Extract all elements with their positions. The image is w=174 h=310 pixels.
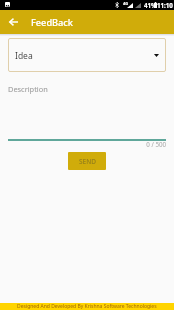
button[interactable]: SEND (68, 152, 106, 170)
staticText: 11:10 (157, 1, 173, 9)
staticText: FeedBack (31, 16, 74, 29)
button[interactable]: Idea (8, 38, 166, 72)
staticText: 4G (123, 1, 129, 6)
staticText: Idea (15, 50, 33, 62)
staticText: 0 / 500 (8, 140, 166, 148)
staticText: Description (8, 84, 48, 94)
button[interactable]: Back (0, 10, 26, 34)
staticText: 41% (144, 1, 157, 9)
staticText: SEND (79, 157, 96, 166)
staticText: Designed And Developed By Krishna Softwa… (17, 303, 157, 310)
